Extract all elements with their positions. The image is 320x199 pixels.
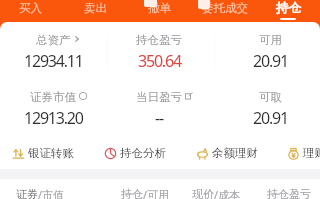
- button[interactable]: 委托成交: [193, 0, 257, 22]
- staticText: 现价: [192, 187, 214, 199]
- staticText: 持仓盈亏: [136, 33, 182, 47]
- other: 总资产: [73, 35, 81, 43]
- staticText: 12934.11: [24, 50, 83, 72]
- staticText: 20.91: [253, 50, 288, 72]
- button[interactable]: 当日盈亏: [106, 90, 212, 130]
- staticText: 可取: [259, 90, 282, 104]
- staticText: 可用: [259, 33, 282, 47]
- staticText: /可用: [143, 187, 170, 199]
- button[interactable]: 持仓: [269, 0, 307, 22]
- staticText: 当日盈亏: [136, 90, 182, 104]
- staticText: --: [155, 107, 163, 129]
- staticText: 总资产: [36, 33, 71, 47]
- staticText: 20.91: [253, 107, 288, 129]
- button[interactable]: 银证转账: [12, 146, 74, 160]
- button[interactable]: 可取: [217, 90, 320, 130]
- staticText: 持仓: [276, 0, 301, 16]
- staticText: 证券: [16, 187, 38, 199]
- button[interactable]: 总资产: [0, 33, 106, 73]
- staticText: 银证转账: [28, 146, 74, 160]
- button[interactable]: 持仓: [267, 187, 311, 199]
- staticText: 持仓: [267, 187, 289, 199]
- other: 证券市值: [79, 92, 87, 100]
- button[interactable]: 持仓盈亏: [106, 33, 212, 73]
- button[interactable]: 理财: [287, 146, 320, 160]
- staticText: 卖出: [84, 1, 107, 15]
- staticText: 12913.20: [24, 107, 83, 129]
- button[interactable]: 余额理财: [196, 146, 258, 160]
- staticText: /成本: [214, 187, 241, 199]
- button[interactable]: 证券市值: [0, 90, 106, 130]
- staticText: /市值: [38, 187, 65, 199]
- button[interactable]: 买入: [11, 0, 49, 22]
- button[interactable]: 卖出: [76, 0, 114, 22]
- button[interactable]: 持仓: [121, 187, 170, 199]
- staticText: 盈亏: [289, 187, 311, 199]
- staticText: 持仓分析: [120, 146, 166, 160]
- staticText: 撤单: [148, 1, 171, 15]
- button[interactable]: 持仓分析: [104, 146, 166, 160]
- button[interactable]: 可用: [217, 33, 320, 73]
- button[interactable]: 现价: [192, 187, 241, 199]
- staticText: 理财: [303, 146, 320, 160]
- staticText: 买入: [19, 1, 42, 15]
- button[interactable]: 撤单: [140, 0, 178, 22]
- other: 当日盈亏: [185, 92, 193, 100]
- button[interactable]: 证券: [16, 187, 65, 199]
- staticText: 余额理财: [212, 146, 258, 160]
- staticText: 证券市值: [30, 90, 76, 104]
- staticText: 持仓: [121, 187, 143, 199]
- staticText: 委托成交: [202, 1, 248, 15]
- staticText: 350.64: [138, 50, 181, 72]
